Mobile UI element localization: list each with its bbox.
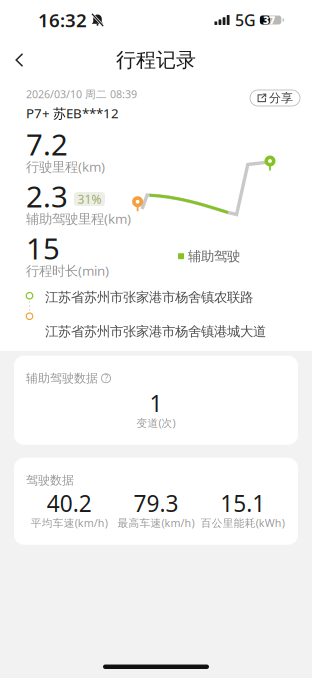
staticText: 2026/03/10 周二 08:39	[26, 87, 137, 101]
staticText: 15	[26, 228, 60, 267]
staticText: 平均车速(km/h)	[31, 516, 108, 530]
staticText: 分享	[269, 91, 293, 105]
staticText: 40.2	[47, 488, 92, 518]
button[interactable]: 分享	[250, 90, 300, 106]
staticText: 16:32	[38, 8, 87, 32]
staticText: 31%	[77, 191, 101, 207]
staticText: 5G	[235, 9, 256, 31]
staticText: 最高车速(km/h)	[117, 516, 194, 530]
staticText: 7.2	[26, 124, 68, 163]
staticText: 79.3	[133, 488, 178, 518]
staticText: 37	[263, 13, 275, 27]
staticText: 15.1	[220, 488, 265, 518]
staticText: 辅助驾驶里程(km)	[26, 210, 131, 227]
staticText: 2.3	[26, 176, 68, 215]
staticText: 驾驶数据	[26, 473, 74, 488]
staticText: 江苏省苏州市张家港市杨舍镇农联路	[45, 289, 253, 305]
staticText: 变道(次)	[136, 416, 175, 430]
staticText: P7+ 苏EB***12	[26, 104, 119, 122]
staticText: 百公里能耗(kWh)	[201, 516, 285, 530]
staticText: 行驶里程(km)	[26, 158, 105, 175]
staticText: 辅助驾驶	[188, 248, 240, 264]
staticText: ?	[104, 373, 107, 383]
staticText: 行程记录	[116, 48, 196, 72]
button[interactable]: 返回	[0, 40, 39, 80]
staticText: 行程时长(min)	[26, 262, 109, 279]
staticText: 1	[149, 388, 162, 418]
staticText: 江苏省苏州市张家港市杨舍镇港城大道	[45, 323, 266, 340]
staticText: 辅助驾驶数据	[26, 371, 98, 386]
